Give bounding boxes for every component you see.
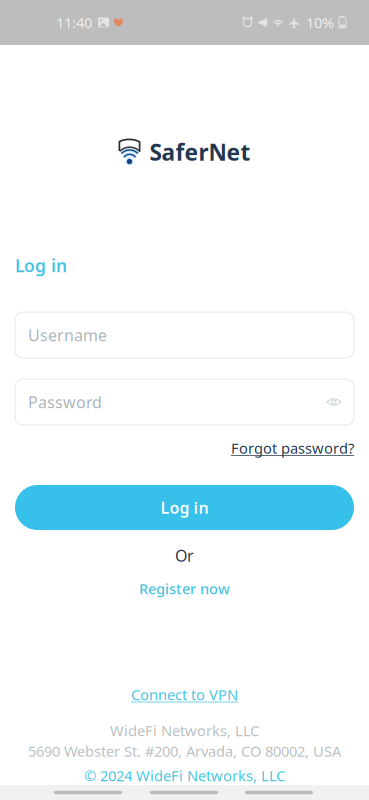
staticText: Log in	[160, 497, 208, 518]
button[interactable]: Home	[150, 791, 218, 794]
staticText: Register now	[139, 579, 230, 598]
staticText: Username	[28, 324, 107, 346]
staticText: 11:40	[56, 13, 92, 32]
button[interactable]: Register now	[139, 579, 230, 598]
button[interactable]: Username	[15, 312, 354, 358]
button[interactable]: Password	[15, 379, 354, 425]
button[interactable]: Back	[54, 791, 122, 794]
button[interactable]: Log in	[15, 485, 354, 530]
button[interactable]: Connect to VPN	[131, 685, 238, 704]
staticText: Or	[175, 545, 194, 566]
staticText: SaferNet	[149, 137, 250, 167]
staticText: © 2024 WideFi Networks, LLC	[84, 766, 285, 785]
staticText: Connect to VPN	[131, 685, 238, 704]
staticText: Forgot password?	[231, 438, 354, 458]
button[interactable]: Forgot password?	[231, 438, 354, 458]
staticText: 5690 Webster St. #200, Arvada, CO 80002,…	[28, 741, 341, 761]
staticText: WideFi Networks, LLC	[110, 721, 259, 740]
button[interactable]: Recent apps	[245, 791, 313, 794]
staticText: Password	[28, 391, 102, 413]
staticText: Log in	[15, 254, 67, 277]
staticText: 10%	[306, 13, 334, 32]
